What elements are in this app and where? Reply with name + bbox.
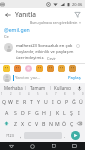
button[interactable]: Tamam <box>26 85 50 91</box>
button[interactable]: Ana ekran <box>22 142 43 150</box>
button[interactable]: . <box>62 130 68 141</box>
staticText: Ğ <box>72 98 76 105</box>
staticText: D <box>21 109 25 116</box>
staticText: A <box>5 109 9 116</box>
staticText: S <box>14 109 17 116</box>
button[interactable]: X <box>19 118 26 129</box>
button[interactable]: Emoji <box>36 65 43 72</box>
staticText: Yanıtla <box>15 10 36 19</box>
button[interactable]: Ü <box>77 96 84 107</box>
button[interactable]: H <box>40 107 47 118</box>
staticText: Q <box>2 98 7 105</box>
button[interactable]: Sesle yaz <box>75 84 83 92</box>
button[interactable]: Ö <box>61 118 68 129</box>
staticText: O <box>57 98 62 105</box>
button[interactable]: Emoji <box>14 65 21 72</box>
staticText: Kullanıcı <box>54 85 72 91</box>
staticText: Tamam <box>30 85 46 91</box>
button[interactable]: L <box>61 107 68 118</box>
staticText: × <box>79 20 81 25</box>
staticText: 9 <box>73 92 75 96</box>
button[interactable]: T <box>28 96 35 107</box>
staticText: ?123 <box>6 133 14 138</box>
staticText: Ş <box>70 109 73 116</box>
button[interactable]: D <box>19 107 26 118</box>
staticText: 5 <box>37 92 39 96</box>
button[interactable]: Q <box>1 96 7 107</box>
staticText: J <box>50 109 52 116</box>
staticText: @emil.gen @emil.gen+@emil.gen <box>4 26 81 33</box>
button[interactable]: Emoji <box>58 65 65 72</box>
button[interactable]: Emoji <box>25 65 32 72</box>
button[interactable]: Daha fazla <box>75 43 81 49</box>
button[interactable]: C <box>26 118 33 129</box>
staticText: 6 <box>46 92 48 96</box>
button[interactable]: Gönder <box>72 9 82 19</box>
staticText: malhest23 Sonsuzluk en çok <box>16 43 73 49</box>
staticText: üzerindeyimiz. <box>16 55 45 61</box>
button[interactable]: , <box>18 130 24 141</box>
button[interactable]: malhest23 Sonsuzluk en çok <box>0 41 85 63</box>
button[interactable]: O <box>56 96 63 107</box>
button[interactable]: Sil <box>75 118 84 129</box>
button[interactable]: G <box>33 107 40 118</box>
button[interactable]: Geri <box>0 142 22 150</box>
button[interactable]: Klavye <box>64 142 85 150</box>
button[interactable]: Y <box>35 96 42 107</box>
button[interactable]: Son kullanılanlar <box>43 142 64 150</box>
staticText: G <box>35 109 39 116</box>
staticText: hoşlardır, etkinlik ve paylaşım ortası <box>16 49 75 55</box>
button[interactable]: W <box>7 96 14 107</box>
button[interactable]: S <box>11 107 19 118</box>
button[interactable]: P <box>63 96 70 107</box>
button[interactable]: Emoji <box>3 65 10 72</box>
button[interactable]: F <box>26 107 33 118</box>
button[interactable]: U <box>42 96 49 107</box>
button[interactable]: R <box>21 96 28 107</box>
button[interactable]: Z <box>11 118 19 129</box>
staticText: E <box>16 98 19 105</box>
button[interactable]: Ğ <box>70 96 77 107</box>
staticText: N <box>49 120 53 127</box>
button[interactable]: Kullanıcı <box>51 85 75 91</box>
staticText: Bunu yalnızca sen görebilirsin <box>30 20 78 25</box>
button[interactable]: E <box>14 96 21 107</box>
button[interactable]: Shift <box>1 118 11 129</box>
button[interactable]: B <box>40 118 47 129</box>
staticText: 1 <box>1 92 3 96</box>
staticText: Ç <box>70 120 74 127</box>
button[interactable]: J <box>47 107 54 118</box>
staticText: 3 <box>19 92 21 96</box>
button[interactable]: Geri <box>3 10 12 19</box>
staticText: Ü <box>79 98 83 105</box>
button[interactable]: Gönder <box>71 131 80 140</box>
button[interactable]: ?123 <box>2 130 18 141</box>
staticText: 20:06 <box>72 2 83 7</box>
staticText: 7 <box>55 92 57 96</box>
staticText: Paylaş <box>68 75 81 81</box>
staticText: H <box>42 109 46 116</box>
staticText: M <box>55 120 60 127</box>
button[interactable]: Ş <box>68 107 75 118</box>
button[interactable]: Merhaba <box>2 85 25 91</box>
button[interactable]: Yanıtını yaz... <box>15 75 67 81</box>
button[interactable]: K <box>54 107 61 118</box>
button[interactable]: I <box>75 107 82 118</box>
staticText: Z <box>14 120 17 127</box>
button[interactable]: M <box>54 118 61 129</box>
button[interactable]: V <box>33 118 40 129</box>
button[interactable]: A <box>3 107 11 118</box>
button[interactable]: N <box>47 118 54 129</box>
button[interactable]: I <box>49 96 56 107</box>
staticText: I <box>78 109 80 116</box>
staticText: . <box>64 133 66 139</box>
staticText: F <box>28 109 31 116</box>
button[interactable]: Paylaş <box>67 75 82 81</box>
staticText: K <box>56 109 60 116</box>
button[interactable]: Emoji <box>69 65 76 72</box>
button[interactable]: Emoji <box>47 65 54 72</box>
staticText: Merhaba <box>4 85 23 91</box>
button[interactable]: Ç <box>68 118 75 129</box>
staticText: Ce <box>4 34 9 39</box>
